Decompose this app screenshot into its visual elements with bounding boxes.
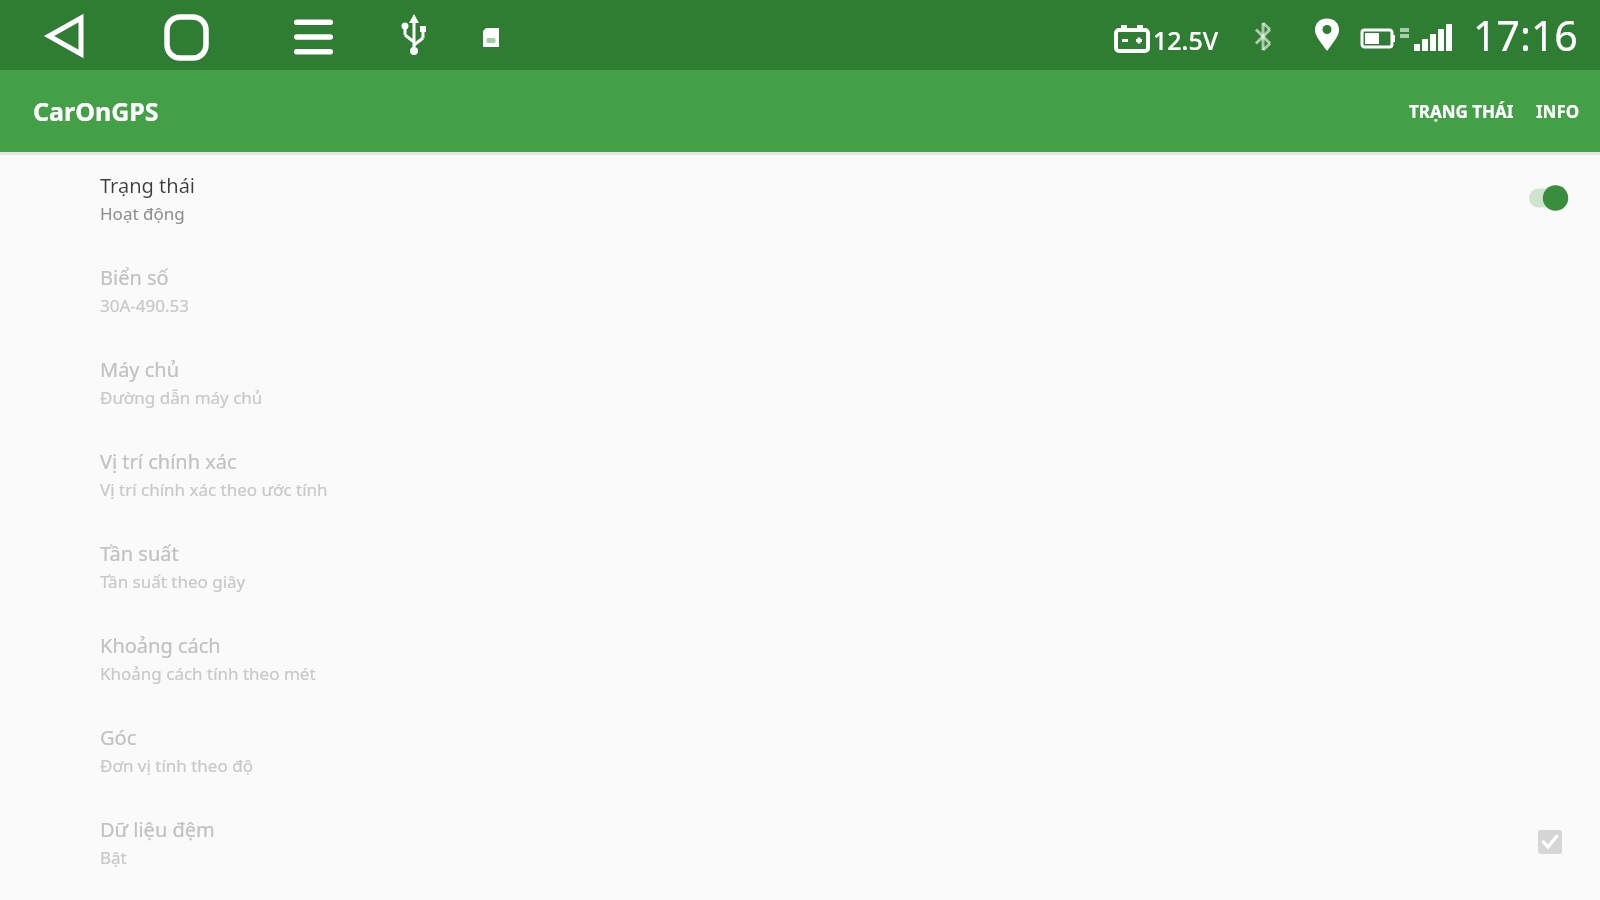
staticText: Biển số bbox=[100, 264, 169, 291]
staticText: Tần suất bbox=[100, 540, 179, 567]
button[interactable]: Biển số bbox=[0, 244, 1600, 336]
staticText: TRẠNG THÁI bbox=[1409, 100, 1514, 123]
staticText: Đường dẫn máy chủ bbox=[100, 386, 263, 409]
button[interactable]: Khoảng cách bbox=[0, 612, 1600, 704]
staticText: Máy chủ bbox=[100, 356, 180, 383]
staticText: Vị trí chính xác theo ước tính bbox=[100, 478, 328, 501]
button[interactable]: Vị trí chính xác bbox=[0, 428, 1600, 520]
staticText: Tần suất theo giây bbox=[100, 570, 246, 593]
staticText: Dữ liệu đệm bbox=[100, 816, 215, 843]
button[interactable]: Trạng thái bbox=[0, 152, 1600, 244]
staticText: Trạng thái bbox=[100, 172, 196, 199]
staticText: Khoảng cách tính theo mét bbox=[100, 662, 316, 685]
button[interactable]: Dữ liệu đệm bbox=[0, 796, 1600, 888]
button[interactable]: Máy chủ bbox=[0, 336, 1600, 428]
button[interactable]: Góc bbox=[0, 704, 1600, 796]
staticText: Bật bbox=[100, 846, 127, 869]
staticText: Đơn vị tính theo độ bbox=[100, 754, 253, 777]
staticText: 17:16 bbox=[1473, 7, 1578, 63]
staticText: 30A-490.53 bbox=[100, 294, 189, 317]
staticText: Vị trí chính xác bbox=[100, 448, 237, 475]
staticText: INFO bbox=[1536, 100, 1580, 123]
staticText: Hoạt động bbox=[100, 202, 185, 225]
button[interactable]: Tần suất bbox=[0, 520, 1600, 612]
staticText: CarOnGPS bbox=[33, 94, 159, 128]
staticText: Khoảng cách bbox=[100, 632, 221, 659]
button[interactable]: INFO bbox=[1532, 100, 1584, 123]
staticText: Góc bbox=[100, 724, 137, 751]
button[interactable]: TRẠNG THÁI bbox=[1405, 100, 1518, 123]
staticText: 12.5V bbox=[1153, 23, 1219, 57]
